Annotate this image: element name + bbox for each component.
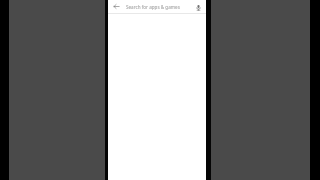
button[interactable]: Search for apps & games xyxy=(126,0,191,13)
button[interactable]: Navigate up xyxy=(112,2,121,11)
staticText: Search for apps & games xyxy=(126,4,180,10)
button[interactable]: Search by voice xyxy=(193,2,203,12)
